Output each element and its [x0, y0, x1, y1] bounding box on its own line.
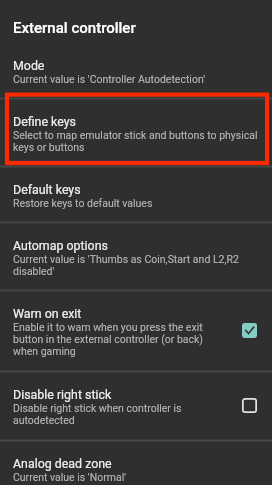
button[interactable]: Automap options: [0, 223, 272, 290]
staticText: Disable right stick when controller is a…: [13, 403, 218, 427]
staticText: Default keys: [13, 182, 81, 197]
staticText: Current value is 'Thumbs as Coin,Start a…: [13, 254, 261, 278]
staticText: Automap options: [13, 238, 108, 253]
button[interactable]: Disable right stick: [0, 372, 272, 440]
button[interactable]: Toggle Disable right stick: [238, 394, 260, 416]
staticText: Select to map emulator stick and buttons…: [13, 130, 261, 154]
staticText: Current value is 'Controller Autodetecti…: [13, 74, 205, 86]
button[interactable]: Mode: [0, 43, 272, 98]
staticText: Mode: [13, 58, 45, 73]
staticText: Restore keys to default values: [13, 198, 153, 210]
staticText: Define keys: [13, 114, 76, 129]
staticText: Current value is 'Normal': [13, 472, 127, 484]
staticText: Analog dead zone: [13, 456, 112, 471]
button[interactable]: Default keys: [0, 167, 272, 222]
button[interactable]: Warn on exit: [0, 291, 272, 371]
staticText: External controller: [13, 19, 136, 37]
staticText: Warn on exit: [13, 306, 82, 321]
button[interactable]: Define keys: [0, 99, 272, 166]
button[interactable]: Analog dead zone: [0, 441, 272, 485]
button[interactable]: Toggle Warn on exit: [238, 319, 260, 341]
staticText: Enable it to warn when you press the exi…: [13, 322, 218, 358]
staticText: Disable right stick: [13, 387, 112, 402]
